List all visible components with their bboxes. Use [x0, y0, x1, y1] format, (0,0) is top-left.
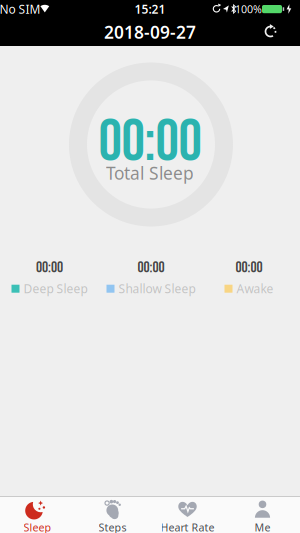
staticText: Sleep — [23, 520, 51, 533]
staticText: Steps — [98, 520, 126, 533]
staticText: No SIM — [0, 1, 40, 17]
staticText: Awake — [236, 281, 273, 297]
staticText: 100% — [235, 2, 262, 16]
staticText: 15:21 — [134, 1, 165, 17]
staticText: Deep Sleep — [23, 281, 87, 297]
staticText: Shallow Sleep — [118, 281, 195, 297]
staticText: Me — [254, 520, 270, 533]
staticText: 00:00 — [36, 258, 63, 277]
staticText: Total Sleep — [106, 161, 194, 184]
button[interactable]: Sleep — [0, 496, 75, 533]
staticText: 2018-09-27 — [104, 20, 196, 43]
button[interactable]: Me — [225, 496, 300, 533]
button[interactable]: Heart Rate — [150, 496, 225, 533]
staticText: 00:00 — [98, 107, 201, 178]
staticText: 00:00 — [235, 258, 262, 277]
staticText: Heart Rate — [160, 520, 214, 533]
button[interactable]: Steps — [75, 496, 150, 533]
staticText: 00:00 — [137, 258, 164, 277]
button[interactable]: Refresh — [260, 21, 280, 41]
